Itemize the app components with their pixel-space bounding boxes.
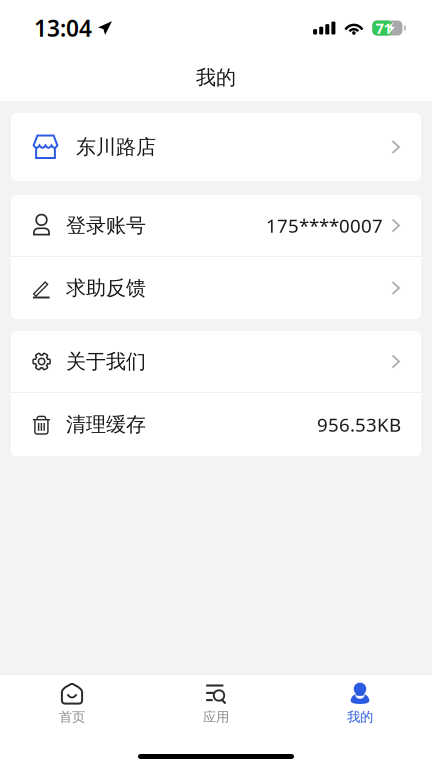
- staticText: 登录账号: [66, 213, 146, 238]
- button[interactable]: 我的: [288, 675, 432, 728]
- staticText: 应用: [203, 709, 229, 725]
- staticText: 清理缓存: [66, 412, 146, 437]
- staticText: 175****0007: [266, 213, 383, 238]
- staticText: 求助反馈: [66, 276, 146, 300]
- staticText: 71: [376, 18, 392, 38]
- staticText: 首页: [59, 709, 85, 725]
- button[interactable]: 登录账号: [11, 195, 421, 256]
- staticText: 关于我们: [66, 349, 146, 374]
- staticText: 东川路店: [76, 135, 156, 159]
- staticText: 我的: [347, 709, 373, 725]
- button[interactable]: 求助反馈: [11, 257, 421, 319]
- button[interactable]: 首页: [0, 675, 144, 728]
- staticText: 956.53KB: [317, 412, 401, 437]
- button[interactable]: 关于我们: [11, 331, 421, 392]
- button[interactable]: 东川路店: [11, 113, 421, 181]
- staticText: 我的: [196, 65, 236, 90]
- button[interactable]: 清理缓存: [11, 393, 421, 456]
- button[interactable]: 应用: [144, 675, 288, 728]
- staticText: 13:04: [34, 13, 92, 43]
